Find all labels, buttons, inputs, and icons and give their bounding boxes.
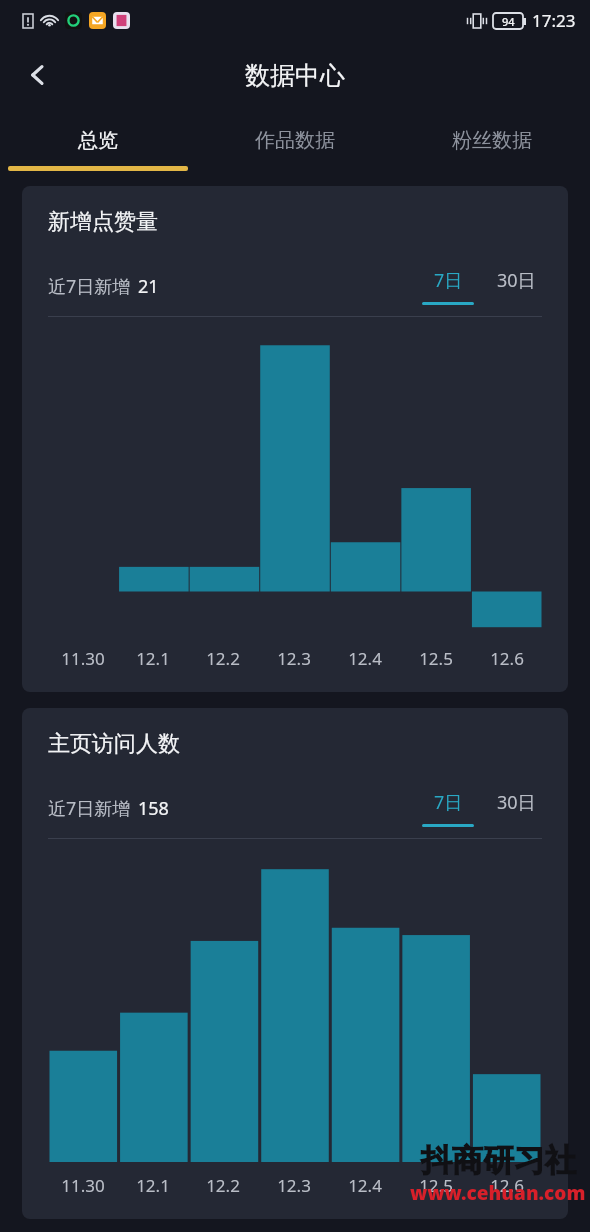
staticText: 12.3 xyxy=(277,647,311,670)
staticText: 总览 xyxy=(78,128,118,153)
staticText: 30日 xyxy=(497,268,536,293)
staticText: 近7日新增 xyxy=(48,796,131,821)
staticText: 12.1 xyxy=(136,647,170,670)
staticText: 抖商研习社 xyxy=(421,1141,576,1180)
button[interactable]: 7日 xyxy=(422,268,474,305)
staticText: 7日 xyxy=(434,268,463,293)
button[interactable]: Back xyxy=(14,51,62,99)
staticText: 94 xyxy=(502,14,515,29)
staticText: 12.1 xyxy=(136,1174,170,1197)
button[interactable]: 7日 xyxy=(422,790,474,827)
button[interactable]: 总览 xyxy=(0,110,196,178)
staticText: 17:23 xyxy=(532,9,576,32)
staticText: 12.4 xyxy=(348,647,382,670)
staticText: 作品数据 xyxy=(255,128,335,153)
staticText: 7日 xyxy=(434,790,463,815)
button[interactable]: 30日 xyxy=(490,268,542,305)
staticText: 主页访问人数 xyxy=(48,730,180,758)
staticText: 158 xyxy=(138,796,169,821)
button[interactable]: 30日 xyxy=(490,790,542,827)
staticText: 12.6 xyxy=(490,1174,524,1197)
button[interactable]: 主页访问人数 xyxy=(22,708,568,1219)
staticText: 12.2 xyxy=(206,1174,240,1197)
staticText: 30日 xyxy=(497,790,536,815)
staticText: 11.30 xyxy=(61,1174,105,1197)
staticText: 12.6 xyxy=(490,647,524,670)
button[interactable]: 作品数据 xyxy=(196,110,393,178)
staticText: www.cehuan.com xyxy=(410,1180,586,1206)
staticText: 12.5 xyxy=(419,647,453,670)
button[interactable]: 粉丝数据 xyxy=(393,110,590,178)
staticText: 近7日新增 xyxy=(48,274,131,299)
staticText: 数据中心 xyxy=(245,60,345,91)
staticText: 12.2 xyxy=(206,647,240,670)
staticText: 11.30 xyxy=(61,647,105,670)
button[interactable]: 新增点赞量 xyxy=(22,186,568,692)
staticText: 粉丝数据 xyxy=(452,128,532,153)
staticText: 12.3 xyxy=(277,1174,311,1197)
staticText: 21 xyxy=(138,274,159,299)
staticText: 12.5 xyxy=(419,1174,453,1197)
staticText: 新增点赞量 xyxy=(48,208,158,236)
staticText: 12.4 xyxy=(348,1174,382,1197)
